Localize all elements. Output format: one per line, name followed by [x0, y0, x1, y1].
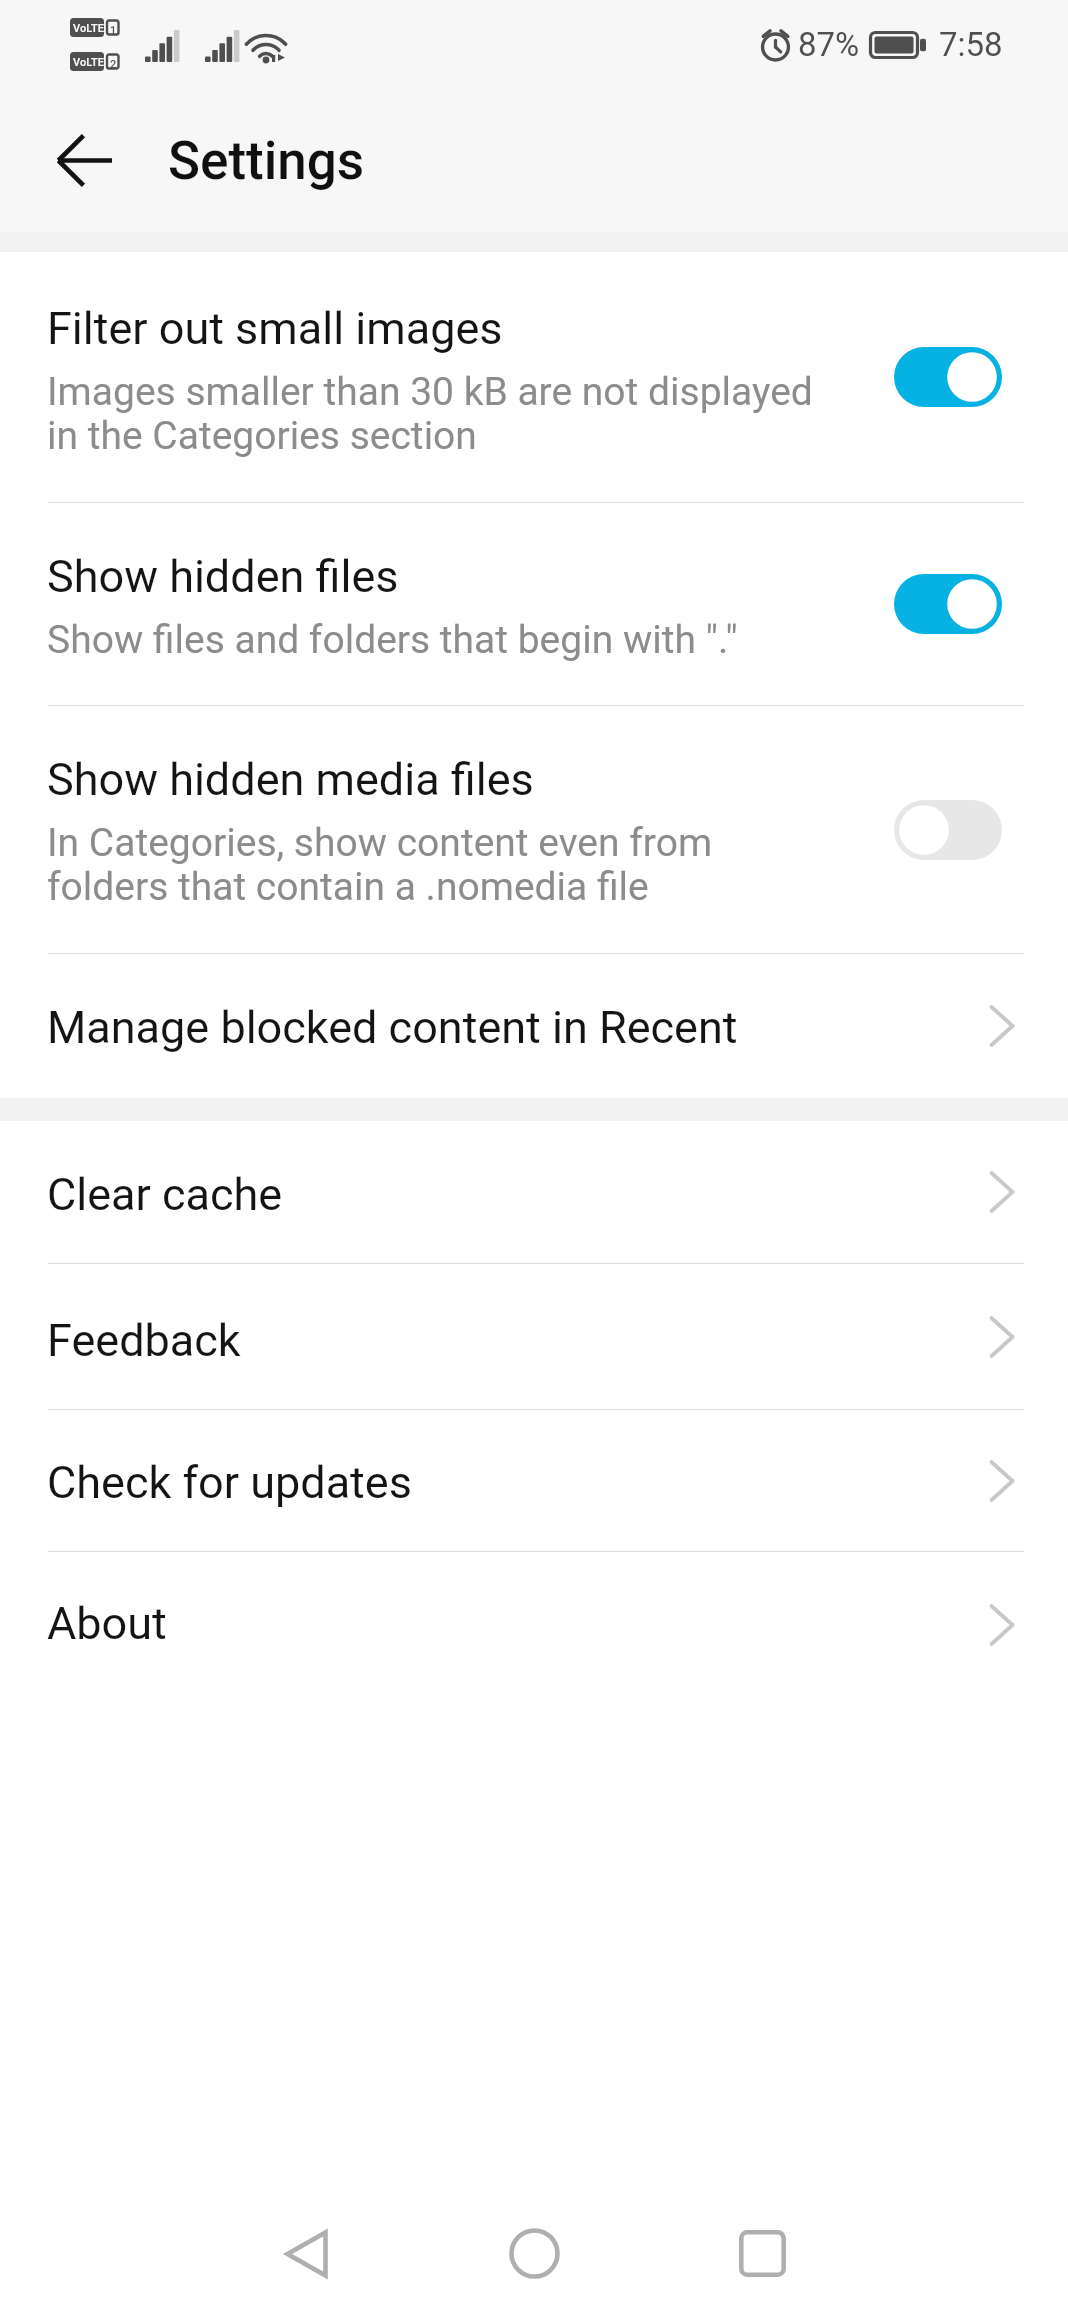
button[interactable]: Back	[28, 104, 140, 216]
staticText: Feedback	[47, 1314, 241, 1367]
button[interactable]: About	[0, 1552, 1068, 1697]
staticText: Show hidden files	[47, 550, 399, 603]
button[interactable]: Clear cache	[0, 1121, 1068, 1263]
staticText: Settings	[168, 130, 365, 192]
staticText: VoLTE	[73, 22, 104, 35]
button[interactable]: Toggle on	[894, 574, 1002, 634]
button[interactable]: Recent apps	[648, 2193, 876, 2314]
button[interactable]: Filter out small images	[0, 252, 1068, 502]
button[interactable]: Check for updates	[0, 1410, 1068, 1551]
staticText: 1	[110, 24, 117, 37]
staticText: 7:58	[939, 25, 1003, 64]
staticText: VoLTE	[73, 56, 104, 69]
staticText: Show files and folders that begin with "…	[47, 617, 738, 663]
button[interactable]: Manage blocked content in Recent	[0, 954, 1068, 1098]
staticText: Manage blocked content in Recent	[47, 1001, 738, 1054]
staticText: 87%	[798, 25, 860, 64]
staticText: Check for updates	[47, 1456, 412, 1509]
staticText: 2	[110, 58, 117, 71]
button[interactable]: Feedback	[0, 1264, 1068, 1409]
staticText: Clear cache	[47, 1168, 283, 1221]
button[interactable]: Toggle off	[894, 800, 1002, 860]
button[interactable]: Show hidden media files	[0, 706, 1068, 953]
staticText: Images smaller than 30 kB are not displa…	[47, 369, 819, 458]
staticText: Show hidden media files	[47, 753, 534, 806]
button[interactable]: Back	[192, 2193, 420, 2314]
button[interactable]: Show hidden files	[0, 503, 1068, 705]
button[interactable]: Toggle on	[894, 347, 1002, 407]
staticText: In Categories, show content even from fo…	[47, 820, 747, 909]
staticText: Filter out small images	[47, 302, 503, 355]
staticText: About	[47, 1597, 167, 1650]
button[interactable]: Home	[420, 2193, 648, 2314]
